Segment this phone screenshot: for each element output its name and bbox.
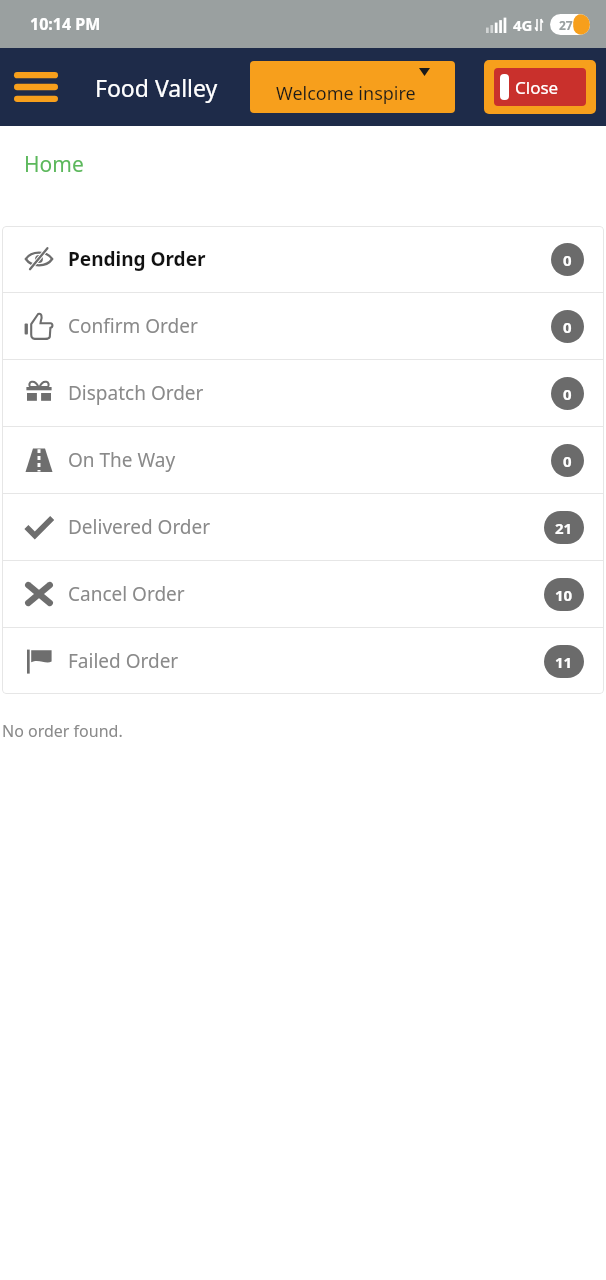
- staticText: 0: [563, 317, 572, 337]
- staticText: 0: [563, 451, 572, 471]
- staticText: On The Way: [68, 447, 176, 473]
- staticText: Delivered Order: [68, 514, 211, 540]
- staticText: 11: [555, 652, 573, 672]
- staticText: Pending Order: [68, 246, 206, 272]
- staticText: Confirm Order: [68, 313, 198, 339]
- button[interactable]: Close: [484, 60, 596, 114]
- staticText: Dispatch Order: [68, 380, 204, 406]
- staticText: 0: [563, 250, 572, 270]
- staticText: Food Valley: [95, 72, 218, 103]
- button[interactable]: Delivered Order: [2, 494, 604, 560]
- button[interactable]: Dispatch Order: [2, 360, 604, 426]
- button[interactable]: Confirm Order: [2, 293, 604, 359]
- staticText: Close: [515, 76, 559, 99]
- staticText: No order found.: [2, 720, 123, 742]
- button[interactable]: Menu: [12, 63, 60, 111]
- staticText: 4G: [513, 15, 533, 35]
- staticText: 0: [563, 384, 572, 404]
- button[interactable]: On The Way: [2, 427, 604, 493]
- button[interactable]: Welcome inspire: [250, 61, 455, 113]
- staticText: 21: [555, 518, 573, 538]
- staticText: Failed Order: [68, 648, 179, 674]
- button[interactable]: Failed Order: [2, 628, 604, 694]
- staticText: 27: [559, 17, 573, 33]
- staticText: Home: [24, 150, 84, 179]
- button[interactable]: Pending Order: [2, 226, 604, 292]
- staticText: 10: [555, 585, 573, 605]
- staticText: Welcome inspire: [276, 81, 416, 106]
- button[interactable]: Cancel Order: [2, 561, 604, 627]
- staticText: 10:14 PM: [30, 13, 101, 35]
- staticText: Cancel Order: [68, 581, 185, 607]
